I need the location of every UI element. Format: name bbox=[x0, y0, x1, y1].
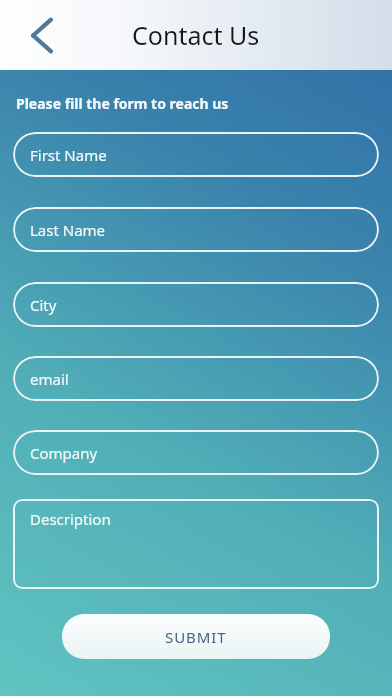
button[interactable]: First Name bbox=[13, 132, 379, 177]
staticText: First Name bbox=[30, 145, 107, 165]
button[interactable]: SUBMIT bbox=[62, 614, 330, 659]
staticText: Company bbox=[30, 443, 98, 463]
staticText: email bbox=[30, 369, 69, 389]
button[interactable]: City bbox=[13, 282, 379, 327]
button[interactable]: Back bbox=[15, 9, 67, 61]
button[interactable]: Company bbox=[13, 430, 379, 475]
staticText: Contact Us bbox=[132, 18, 260, 52]
staticText: Last Name bbox=[30, 220, 106, 240]
staticText: SUBMIT bbox=[165, 627, 227, 647]
button[interactable]: Description bbox=[13, 499, 379, 589]
staticText: Description bbox=[30, 509, 111, 529]
button[interactable]: email bbox=[13, 356, 379, 401]
staticText: City bbox=[30, 295, 57, 315]
button[interactable]: Last Name bbox=[13, 207, 379, 252]
staticText: Please fill the form to reach us bbox=[16, 94, 229, 113]
